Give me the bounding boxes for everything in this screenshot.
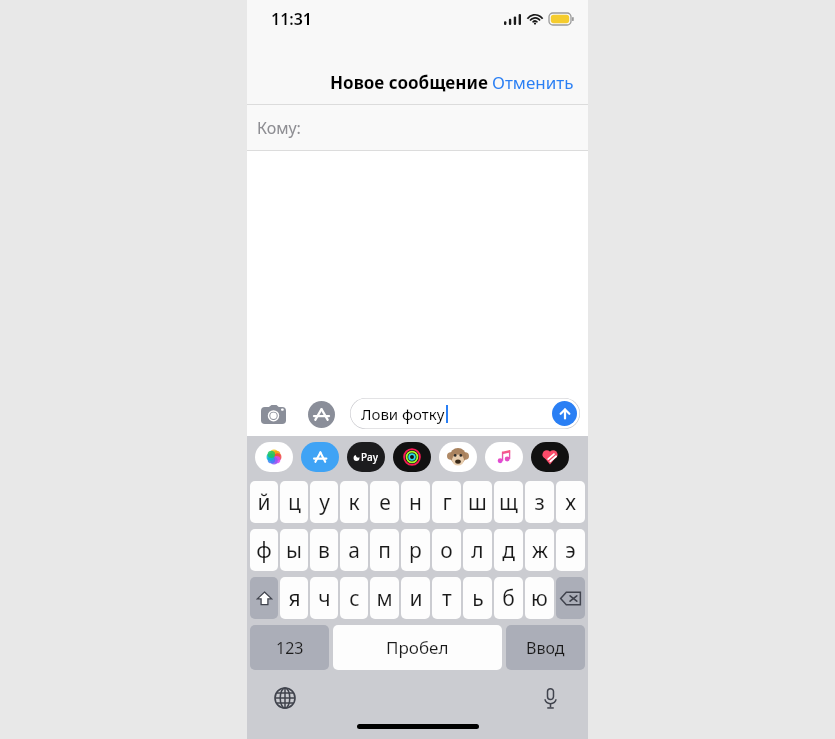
button[interactable]: н xyxy=(401,481,430,523)
button[interactable]: ы xyxy=(280,529,308,571)
button[interactable]: я xyxy=(280,577,308,619)
staticText: г xyxy=(442,488,452,517)
button[interactable]: е xyxy=(370,481,399,523)
staticText: с xyxy=(349,584,360,613)
staticText: ч xyxy=(318,584,331,613)
staticText: щ xyxy=(499,488,518,517)
button[interactable]: Кому: xyxy=(247,105,588,151)
staticText: в xyxy=(318,536,330,565)
staticText: м xyxy=(376,584,393,613)
button[interactable]: App Store xyxy=(301,442,339,472)
staticText: к xyxy=(348,488,360,517)
button[interactable]: э xyxy=(556,529,585,571)
button[interactable]: Dictate xyxy=(534,682,566,714)
button[interactable]: Activity xyxy=(393,442,431,472)
button[interactable]: ж xyxy=(525,529,554,571)
staticText: Новое сообщение xyxy=(330,71,488,94)
button[interactable]: Camera xyxy=(258,399,288,429)
button[interactable]: й xyxy=(250,481,278,523)
staticText: э xyxy=(565,536,576,565)
staticText: у xyxy=(319,488,330,517)
staticText: Пробел xyxy=(386,636,449,659)
staticText: ц xyxy=(288,488,301,517)
staticText: ь xyxy=(472,584,484,613)
staticText: о xyxy=(440,536,453,565)
button[interactable]: Лови фотку xyxy=(350,398,580,429)
button[interactable]: Ввод xyxy=(506,625,585,670)
staticText: ы xyxy=(286,536,302,565)
button[interactable]: ш xyxy=(463,481,492,523)
button[interactable]: ь xyxy=(463,577,492,619)
button[interactable]: ч xyxy=(310,577,338,619)
button[interactable]: щ xyxy=(494,481,523,523)
button[interactable]: м xyxy=(370,577,399,619)
button[interactable]: Backspace xyxy=(556,577,585,619)
button[interactable]: ю xyxy=(525,577,554,619)
staticText: н xyxy=(409,488,422,517)
button[interactable]: з xyxy=(525,481,554,523)
button[interactable]: и xyxy=(401,577,430,619)
button[interactable]: в xyxy=(310,529,338,571)
button[interactable]: Shift xyxy=(250,577,278,619)
button[interactable]: Apple Pay xyxy=(347,442,385,472)
button[interactable]: с xyxy=(340,577,368,619)
button[interactable]: Send xyxy=(552,401,577,426)
button[interactable]: ц xyxy=(280,481,308,523)
staticText: а xyxy=(348,536,360,565)
button[interactable]: Пробел xyxy=(333,625,502,670)
button[interactable]: Memoji xyxy=(439,442,477,472)
button[interactable]: о xyxy=(432,529,461,571)
staticText: р xyxy=(409,536,422,565)
button[interactable]: App Store xyxy=(306,399,336,429)
staticText: 11:31 xyxy=(271,8,313,30)
staticText: е xyxy=(379,488,391,517)
button[interactable]: р xyxy=(401,529,430,571)
staticText: и xyxy=(409,584,423,613)
button[interactable]: б xyxy=(494,577,523,619)
staticText: б xyxy=(502,584,515,613)
button[interactable]: Отменить xyxy=(478,65,588,100)
staticText: п xyxy=(378,536,391,565)
staticText: ю xyxy=(531,584,548,613)
button[interactable]: 123 xyxy=(250,625,329,670)
button[interactable]: л xyxy=(463,529,492,571)
staticText: Ввод xyxy=(526,637,565,659)
button[interactable]: п xyxy=(370,529,399,571)
button[interactable]: ф xyxy=(250,529,278,571)
staticText: т xyxy=(442,584,452,613)
button[interactable]: к xyxy=(340,481,368,523)
staticText: Кому: xyxy=(257,117,301,139)
staticText: Pay xyxy=(361,450,379,464)
button[interactable]: г xyxy=(432,481,461,523)
button[interactable]: Change keyboard xyxy=(269,682,301,714)
staticText: 123 xyxy=(276,637,304,659)
staticText: Отменить xyxy=(492,71,574,94)
button[interactable]: Health xyxy=(531,442,569,472)
staticText: ф xyxy=(256,536,272,565)
button[interactable]: т xyxy=(432,577,461,619)
staticText: ш xyxy=(468,488,487,517)
staticText: л xyxy=(471,536,484,565)
staticText: з xyxy=(534,488,545,517)
staticText: д xyxy=(502,536,515,565)
button[interactable]: Photos xyxy=(255,442,293,472)
staticText: Лови фотку xyxy=(361,404,445,424)
button[interactable]: Music xyxy=(485,442,523,472)
staticText: ж xyxy=(532,536,548,565)
staticText: й xyxy=(257,488,271,517)
button[interactable]: у xyxy=(310,481,338,523)
button[interactable]: х xyxy=(556,481,585,523)
button[interactable]: д xyxy=(494,529,523,571)
staticText: х xyxy=(565,488,576,517)
button[interactable]: а xyxy=(340,529,368,571)
staticText: я xyxy=(288,584,301,613)
